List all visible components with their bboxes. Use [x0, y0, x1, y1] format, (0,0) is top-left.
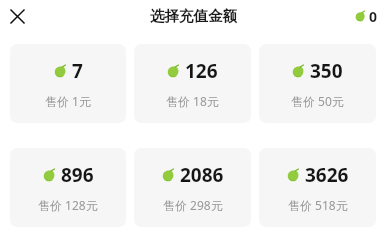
staticText: 350 — [310, 58, 343, 84]
button[interactable]: 350 — [259, 44, 376, 123]
staticText: 售价 128元 — [38, 197, 98, 213]
button[interactable]: 0 — [355, 7, 378, 26]
staticText: 7 — [72, 58, 83, 84]
staticText: 售价 298元 — [163, 197, 223, 213]
staticText: 售价 50元 — [291, 93, 344, 109]
staticText: 售价 18元 — [166, 93, 219, 109]
staticText: 选择充值金额 — [150, 7, 237, 25]
button[interactable]: Close — [5, 4, 29, 28]
button[interactable]: 7 — [10, 44, 126, 123]
button[interactable]: 3626 — [259, 148, 376, 227]
staticText: 3626 — [305, 162, 349, 188]
staticText: 售价 1元 — [45, 93, 91, 109]
button[interactable]: 126 — [134, 44, 251, 123]
button[interactable]: 896 — [10, 148, 126, 227]
staticText: 126 — [185, 58, 218, 84]
staticText: 售价 518元 — [288, 197, 348, 213]
button[interactable]: 2086 — [134, 148, 251, 227]
staticText: 0 — [369, 7, 378, 26]
staticText: 896 — [61, 162, 94, 188]
staticText: 2086 — [180, 162, 224, 188]
